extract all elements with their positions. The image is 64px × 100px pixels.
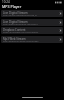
button[interactable]: Live Digital Stream bbox=[1, 19, 63, 26]
other: Open bbox=[59, 38, 62, 41]
other: Open bbox=[59, 12, 62, 15]
staticText: MP3 Player bbox=[2, 4, 22, 9]
button[interactable]: Live Digital Stream bbox=[1, 10, 63, 17]
staticText: http://stream.radioserver.net/live_hi bbox=[3, 14, 56, 17]
staticText: Dropbox Content bbox=[3, 28, 54, 32]
staticText: Live Digital Stream bbox=[3, 20, 54, 24]
staticText: Live Digital Stream bbox=[3, 11, 54, 15]
staticText: 10:24 bbox=[2, 0, 10, 4]
staticText: Mp3 Web Stream bbox=[3, 37, 54, 41]
staticText: https://dl.dropbox.com/music/playlist bbox=[3, 31, 56, 34]
button[interactable]: Dropbox Content bbox=[1, 27, 63, 34]
other: Open bbox=[59, 21, 62, 24]
button[interactable]: Mp3 Web Stream bbox=[1, 36, 63, 43]
other: Open bbox=[59, 29, 62, 32]
staticText: http://digital.mp3stream.com/play24 bbox=[3, 23, 56, 26]
staticText: http://webstream.audio/channel/mp3 bbox=[3, 40, 56, 43]
